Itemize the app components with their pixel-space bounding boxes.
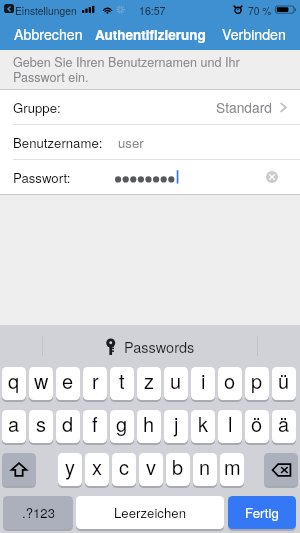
staticText: Authentifizierung <box>95 25 206 44</box>
staticText: g <box>116 410 128 438</box>
staticText: d <box>62 410 74 438</box>
button[interactable]: Eingabe löschen <box>266 171 278 183</box>
staticText: Abbrechen <box>14 24 83 44</box>
staticText: o <box>224 367 236 395</box>
button[interactable]: d <box>56 410 80 445</box>
staticText: n <box>199 453 211 481</box>
button[interactable]: t <box>110 367 134 402</box>
button[interactable]: Benutzername: <box>0 125 300 159</box>
button[interactable]: g <box>110 410 134 445</box>
staticText: f <box>92 410 98 438</box>
button[interactable]: z <box>137 367 161 402</box>
staticText: z <box>144 367 154 395</box>
staticText: Geben Sie Ihren Benutzernamen und Ihr Pa… <box>13 53 240 86</box>
button[interactable]: Rückschritt <box>264 453 298 488</box>
button[interactable]: Verbinden <box>214 18 300 50</box>
button[interactable]: l <box>218 410 242 445</box>
staticText: c <box>119 453 129 481</box>
staticText: b <box>172 453 184 481</box>
staticText: Gruppe: <box>13 98 61 117</box>
staticText: Passwort: <box>13 168 71 187</box>
button[interactable]: Abbrechen <box>0 18 91 50</box>
button[interactable]: ö <box>245 410 269 445</box>
button[interactable]: .?123 <box>3 496 73 531</box>
staticText: v <box>146 453 156 481</box>
staticText: Standard <box>216 97 272 117</box>
button[interactable]: ü <box>272 367 296 402</box>
staticText: user <box>118 133 144 152</box>
button[interactable]: n <box>193 453 217 488</box>
button[interactable]: a <box>2 410 26 445</box>
button[interactable]: c <box>112 453 136 488</box>
staticText: m <box>224 453 241 481</box>
staticText: .?123 <box>22 503 55 522</box>
staticText: u <box>170 367 182 395</box>
staticText: 70 % <box>248 3 272 18</box>
staticText: t <box>119 367 125 395</box>
staticText: Passwords <box>124 336 195 357</box>
staticText: Benutzername: <box>13 133 103 152</box>
button[interactable]: Gruppe: <box>0 90 300 124</box>
button[interactable]: i <box>191 367 215 402</box>
button[interactable]: v <box>139 453 163 488</box>
staticText: i <box>201 367 206 395</box>
button[interactable]: o <box>218 367 242 402</box>
button[interactable]: Umschalttaste <box>2 453 36 488</box>
staticText: Einstellungen <box>15 3 77 18</box>
staticText: ü <box>278 367 290 395</box>
button[interactable]: u <box>164 367 188 402</box>
staticText: Leerzeichen <box>114 503 186 522</box>
button[interactable]: f <box>83 410 107 445</box>
staticText: p <box>251 367 263 395</box>
staticText: q <box>8 367 20 395</box>
button[interactable]: Passwords <box>100 332 201 361</box>
button[interactable]: h <box>137 410 161 445</box>
button[interactable]: j <box>164 410 188 445</box>
staticText: Verbinden <box>222 24 286 44</box>
button[interactable]: k <box>191 410 215 445</box>
staticText: w <box>34 367 49 395</box>
staticText: 16:57 <box>139 3 166 18</box>
staticText: s <box>36 410 46 438</box>
staticText: r <box>92 367 99 395</box>
staticText: x <box>92 453 102 481</box>
button[interactable]: x <box>85 453 109 488</box>
button[interactable]: r <box>83 367 107 402</box>
button[interactable]: q <box>2 367 26 402</box>
button[interactable]: b <box>166 453 190 488</box>
button[interactable]: m <box>220 453 244 488</box>
button[interactable]: Leerzeichen <box>76 496 224 531</box>
button[interactable]: p <box>245 367 269 402</box>
button[interactable]: Passwort: <box>0 160 300 194</box>
staticText: a <box>8 410 20 438</box>
staticText: h <box>143 410 155 438</box>
button[interactable]: w <box>29 367 53 402</box>
staticText: ä <box>278 410 290 438</box>
button[interactable]: Fertig <box>228 496 296 531</box>
staticText: j <box>174 410 179 438</box>
button[interactable]: s <box>29 410 53 445</box>
button[interactable]: y <box>58 453 82 488</box>
staticText: k <box>198 410 208 438</box>
button[interactable]: e <box>56 367 80 402</box>
button[interactable]: ä <box>272 410 296 445</box>
staticText: e <box>62 367 74 395</box>
staticText: Fertig <box>245 503 279 522</box>
staticText: y <box>65 453 75 481</box>
button[interactable]: Zurück <box>4 4 14 13</box>
staticText: l <box>228 410 233 438</box>
staticText: ö <box>251 410 263 438</box>
